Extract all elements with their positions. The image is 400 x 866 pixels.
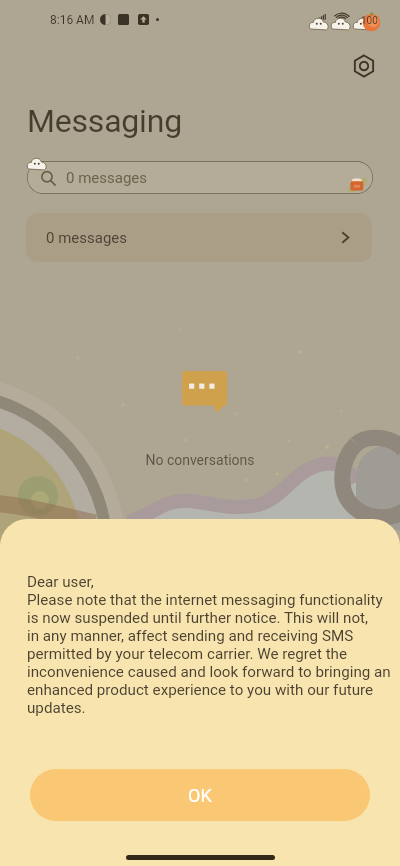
button[interactable]: 0 messages: [27, 161, 373, 194]
staticText: 100: [361, 15, 378, 27]
staticText: 0 messages: [46, 229, 128, 247]
staticText: OK: [188, 785, 212, 806]
staticText: No conversations: [0, 452, 400, 468]
staticText: Dear user, Please note that the internet…: [27, 573, 391, 717]
staticText: 0 messages: [66, 169, 148, 187]
button[interactable]: Settings: [342, 44, 386, 88]
staticText: 8:16 AM: [50, 13, 95, 27]
staticText: Messaging: [27, 102, 182, 140]
button[interactable]: 0 messages: [26, 213, 372, 262]
button[interactable]: OK: [30, 769, 370, 821]
